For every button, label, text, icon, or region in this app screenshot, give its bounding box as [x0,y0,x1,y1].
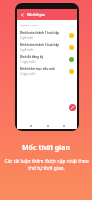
staticText: Bình thêm mục tiêu mới [20,67,55,71]
staticText: Bình đã đăng ký [20,55,44,59]
staticText: Các tài luận thêm được cập nhật theo thứ… [4,158,89,172]
staticText: Tháng 11, 2021 [20,23,38,26]
button[interactable]: Tab 1 [28,123,33,128]
button[interactable]: Tab 3 [61,123,66,128]
button[interactable]: Bình đã đăng ký [17,53,77,65]
button[interactable]: Add entry [69,104,76,111]
staticText: 2 giờ trước [20,36,34,40]
button[interactable]: Tab 2 [45,123,50,128]
staticText: 4 giờ trước [20,48,34,52]
staticText: 2 ngày trước [20,72,36,76]
staticText: Mốc thời gian [22,143,70,153]
staticText: Bình hoàn thành 1 buổi tập [20,31,60,35]
button[interactable]: Bình thêm mục tiêu mới [17,65,77,77]
staticText: Mốc thời gian [27,13,45,17]
button[interactable]: Bình hoàn thành 3 buổi tập [17,41,77,53]
staticText: Bình hoàn thành 3 buổi tập [20,43,60,47]
staticText: 1 ngày trước [20,60,36,64]
button[interactable]: Back [19,12,25,18]
button[interactable]: Bình hoàn thành 1 buổi tập [17,29,77,41]
